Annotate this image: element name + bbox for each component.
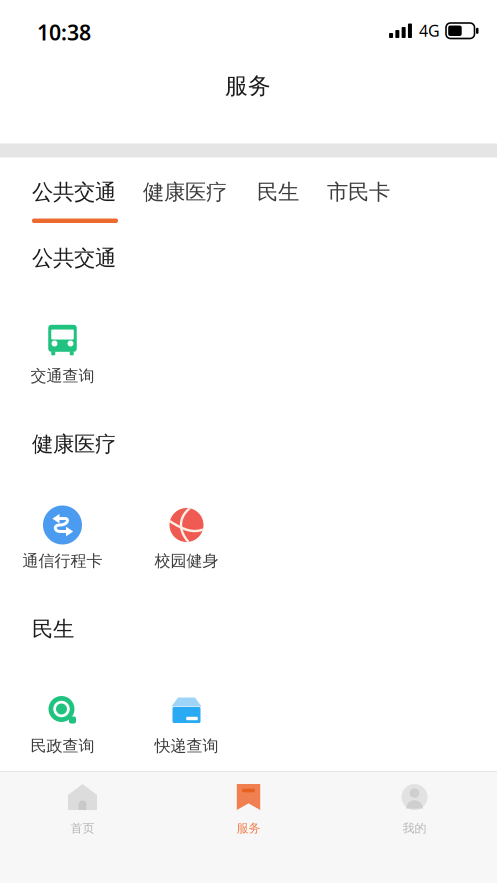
button[interactable]: 市民卡	[327, 161, 391, 227]
staticText: 公共交通	[32, 245, 116, 271]
button[interactable]: 健康医疗	[143, 161, 229, 227]
button[interactable]: 民生	[257, 161, 300, 227]
button[interactable]: 首页	[27, 784, 137, 883]
button[interactable]: 校园健身	[131, 502, 241, 574]
staticText: 10:38	[37, 18, 91, 46]
staticText: 通信行程卡	[22, 551, 102, 571]
staticText: 首页	[70, 821, 94, 836]
staticText: 民生	[257, 179, 299, 205]
staticText: 健康医疗	[32, 431, 116, 457]
staticText: 校园健身	[154, 551, 218, 571]
button[interactable]: 我的	[359, 784, 469, 883]
staticText: 快递查询	[154, 736, 218, 756]
staticText: 服务	[236, 821, 260, 836]
button[interactable]: 快递查询	[131, 687, 241, 759]
staticText: 我的	[402, 821, 426, 836]
staticText: 市民卡	[327, 179, 390, 205]
staticText: 服务	[225, 72, 271, 100]
button[interactable]: 通信行程卡	[7, 502, 117, 574]
staticText: 4G	[419, 20, 440, 41]
button[interactable]: 服务	[193, 784, 303, 883]
staticText: 民生	[32, 616, 74, 642]
button[interactable]: 服务	[188, 66, 308, 106]
staticText: 公共交通	[32, 179, 116, 205]
staticText: 健康医疗	[143, 179, 227, 205]
staticText: 民政查询	[30, 736, 94, 756]
button[interactable]: 公共交通	[32, 161, 118, 227]
staticText: 交通查询	[30, 366, 94, 386]
button[interactable]: 民政查询	[7, 687, 117, 759]
button[interactable]: 交通查询	[7, 317, 117, 389]
